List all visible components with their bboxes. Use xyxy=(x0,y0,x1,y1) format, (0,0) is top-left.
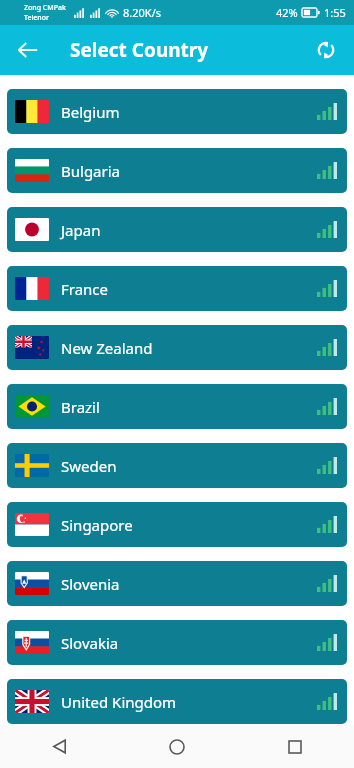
button[interactable]: New Zealand xyxy=(7,325,347,370)
staticText: United Kingdom xyxy=(61,692,177,712)
staticText: Belgium xyxy=(61,102,120,122)
staticText: Bulgaria xyxy=(61,161,121,181)
staticText: Sweden xyxy=(61,456,117,476)
staticText: Telenor xyxy=(24,13,49,23)
staticText: Zong CMPak xyxy=(24,3,66,13)
staticText: 8.20K/s xyxy=(123,5,161,20)
staticText: Slovakia xyxy=(61,633,119,653)
staticText: Singapore xyxy=(61,515,133,535)
button[interactable]: Back xyxy=(0,725,118,768)
button[interactable]: Singapore xyxy=(7,502,347,547)
button[interactable]: Bulgaria xyxy=(7,148,347,193)
button[interactable]: Belgium xyxy=(7,89,347,134)
button[interactable]: Refresh xyxy=(306,30,346,70)
button[interactable]: United Kingdom xyxy=(7,679,347,724)
staticText: Japan xyxy=(61,220,101,240)
staticText: Slovenia xyxy=(61,574,120,594)
button[interactable]: France xyxy=(7,266,347,311)
staticText: Brazil xyxy=(61,397,100,417)
button[interactable]: Sweden xyxy=(7,443,347,488)
button[interactable]: Recents xyxy=(236,725,354,768)
button[interactable]: Back xyxy=(8,30,48,70)
button[interactable]: Japan xyxy=(7,207,347,252)
staticText: New Zealand xyxy=(61,338,153,358)
staticText: 1:55 xyxy=(324,5,346,20)
staticText: Select Country xyxy=(70,37,209,63)
button[interactable]: Home xyxy=(118,725,236,768)
button[interactable]: Brazil xyxy=(7,384,347,429)
button[interactable]: Slovakia xyxy=(7,620,347,665)
staticText: France xyxy=(61,279,109,299)
button[interactable]: Slovenia xyxy=(7,561,347,606)
staticText: 42% xyxy=(276,5,298,20)
